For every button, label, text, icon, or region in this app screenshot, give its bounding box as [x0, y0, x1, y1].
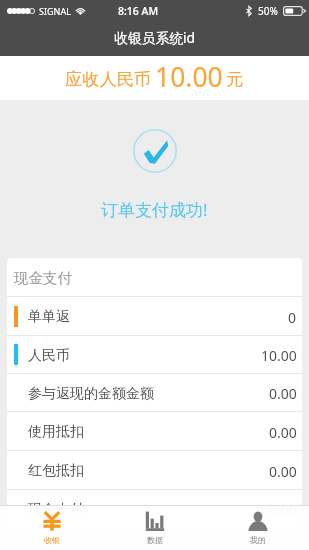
staticText: 0.00 — [269, 423, 297, 442]
staticText: 收银 — [44, 535, 60, 545]
staticText: 数据 — [147, 535, 163, 545]
staticText: SIGNAL — [39, 5, 71, 17]
staticText: 订单支付成功! — [101, 198, 208, 221]
staticText: 0 — [288, 308, 297, 327]
button[interactable]: 单单返 — [7, 297, 302, 335]
staticText: 8:16 AM — [118, 4, 159, 18]
staticText: 10.00 — [261, 346, 297, 365]
staticText: 10.00 — [155, 59, 223, 95]
button[interactable]: 红包抵扣 — [7, 451, 302, 489]
staticText: 50% — [258, 4, 278, 18]
staticText: 参与返现的金额金额 — [28, 385, 154, 403]
button[interactable]: 人民币 — [7, 336, 302, 373]
staticText: 元 — [226, 68, 244, 90]
button[interactable]: 收银 — [0, 506, 103, 550]
staticText: 使用抵扣 — [28, 423, 84, 441]
staticText: 0.00 — [269, 501, 297, 520]
staticText: 我的 — [250, 535, 266, 545]
button[interactable]: 参与返现的金额金额 — [7, 374, 302, 411]
staticText: 单单返 — [28, 308, 70, 326]
button[interactable]: 现金支付 — [7, 490, 302, 528]
staticText: 红包抵扣 — [28, 462, 84, 480]
staticText: 0.00 — [269, 384, 297, 403]
button[interactable]: 使用抵扣 — [7, 412, 302, 450]
staticText: 人民币 — [28, 347, 70, 365]
button[interactable]: 我的 — [206, 506, 309, 550]
staticText: 现金支付 — [14, 269, 72, 287]
staticText: 现金支付 — [28, 501, 84, 519]
staticText: 应收人民币 — [65, 68, 151, 90]
staticText: 收银员系统id — [114, 28, 196, 47]
staticText: 0.00 — [269, 462, 297, 481]
button[interactable]: 数据 — [103, 506, 206, 550]
